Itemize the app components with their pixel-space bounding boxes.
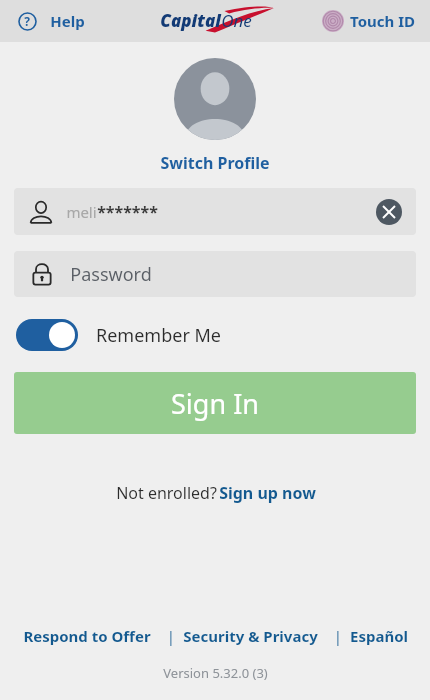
staticText: Security & Privacy [183,626,318,646]
staticText: ? [24,13,30,29]
staticText: Password [70,262,152,287]
button[interactable]: Sign In [14,372,416,434]
staticText: Sign In [171,385,259,422]
staticText: Respond to Offer [23,626,151,646]
staticText: Capital [160,9,221,32]
button[interactable]: Clear username [376,199,402,225]
staticText: Español [350,626,408,646]
button[interactable]: Touch ID [319,7,418,35]
staticText: Help [50,11,85,31]
staticText: meli [66,202,97,222]
staticText: | [155,626,179,646]
staticText: | [322,626,346,646]
staticText: Remember Me [96,323,221,348]
button[interactable]: Switch Profile [154,150,276,176]
button[interactable]: Respond to Offer [19,622,155,650]
staticText: One [221,9,252,32]
staticText: Switch Profile [160,152,270,174]
staticText: Touch ID [350,11,415,31]
staticText: Version 5.32.0 (3) [163,664,268,682]
button[interactable]: Password [14,251,416,297]
staticText: ******* [97,201,158,223]
staticText: Not enrolled? [114,482,219,504]
button[interactable]: ? [14,7,89,35]
button[interactable]: Security & Privacy [179,622,322,650]
staticText: Sign up now [219,482,316,504]
button[interactable]: Remember Me [16,319,430,351]
button[interactable]: Español [346,622,412,650]
button[interactable]: Sign up now [219,479,316,507]
button[interactable]: meli [14,188,416,235]
button[interactable]: Profile picture [174,58,256,140]
